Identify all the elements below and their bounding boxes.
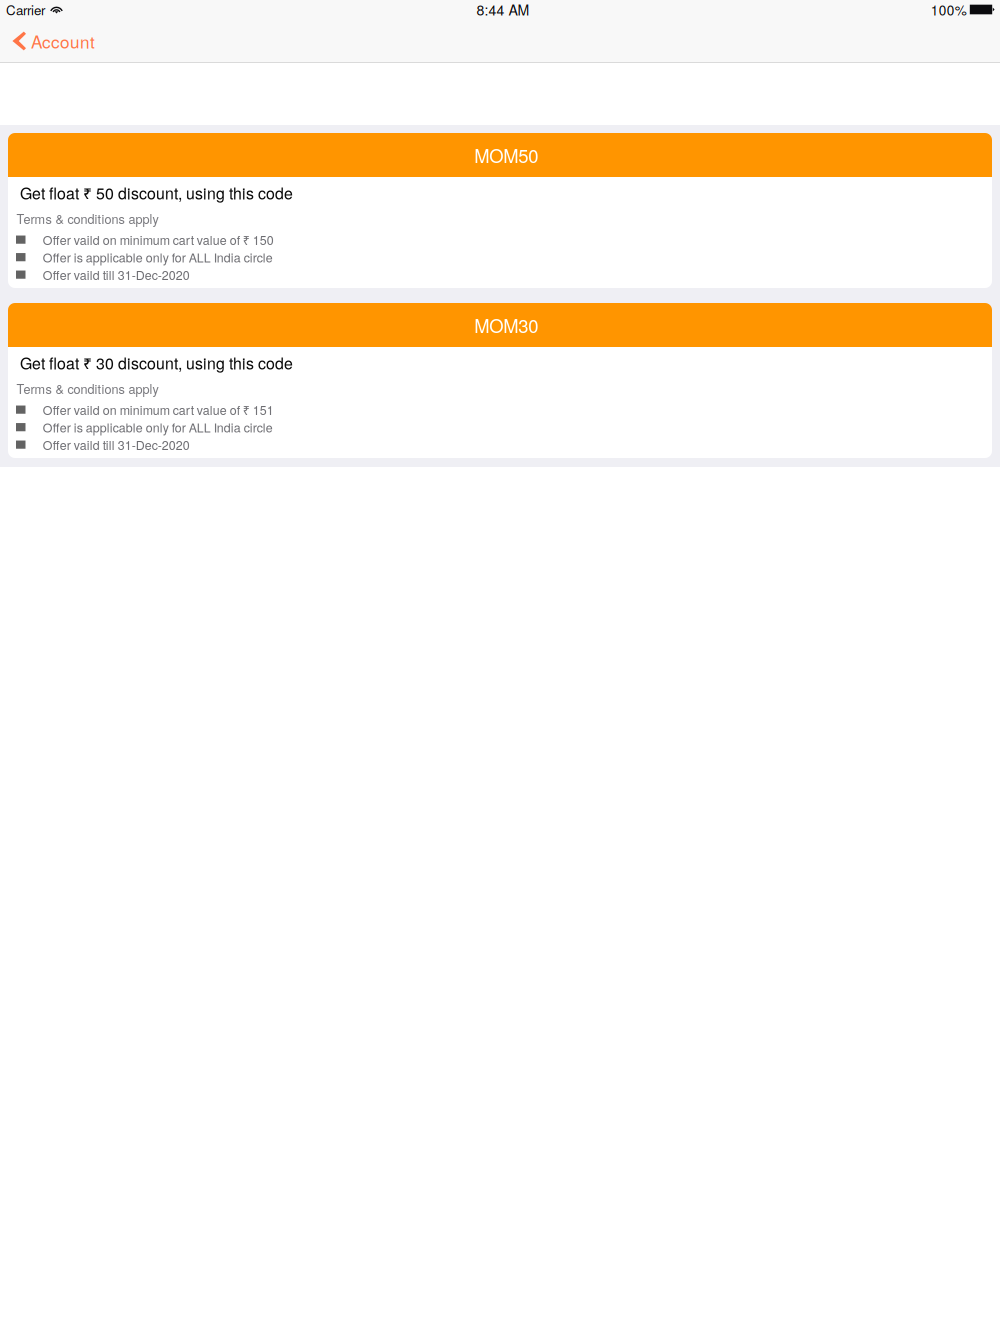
- staticText: Offer is applicable only for ALL India c…: [43, 248, 273, 266]
- staticText: Terms & conditions apply: [16, 210, 158, 228]
- staticText: Offer is applicable only for ALL India c…: [43, 418, 273, 436]
- staticText: Account: [31, 29, 95, 53]
- staticText: MOM50: [474, 142, 538, 168]
- staticText: Get float ₹ 50 discount, using this code: [20, 181, 293, 204]
- staticText: MOM30: [474, 312, 538, 338]
- staticText: Carrier: [6, 0, 45, 19]
- staticText: 100%: [931, 0, 967, 19]
- staticText: Offer vaild on minimum cart value of ₹ 1…: [43, 231, 274, 249]
- staticText: Offer vaild on minimum cart value of ₹ 1…: [43, 401, 274, 419]
- staticText: Terms & conditions apply: [16, 380, 158, 398]
- staticText: Get float ₹ 30 discount, using this code: [20, 351, 293, 374]
- staticText: Offer vaild till 31-Dec-2020: [43, 266, 190, 284]
- button[interactable]: MOM50: [8, 133, 992, 177]
- button[interactable]: Account: [0, 19, 109, 63]
- staticText: 8:44 AM: [476, 0, 529, 20]
- button[interactable]: MOM30: [8, 303, 992, 347]
- staticText: Offer vaild till 31-Dec-2020: [43, 436, 190, 454]
